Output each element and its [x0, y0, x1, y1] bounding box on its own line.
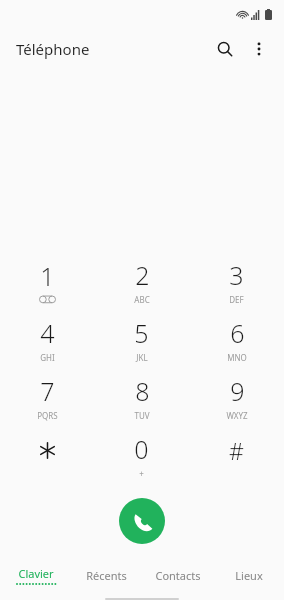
- staticText: 7: [40, 374, 55, 408]
- staticText: 9: [230, 374, 245, 408]
- staticText: 0: [134, 432, 149, 466]
- staticText: MNO: [227, 352, 247, 363]
- staticText: 3: [229, 258, 244, 292]
- staticText: +: [139, 468, 144, 479]
- button[interactable]: 7: [0, 368, 94, 426]
- button[interactable]: 1: [0, 252, 94, 310]
- staticText: Contacts: [155, 568, 201, 583]
- staticText: 1: [40, 259, 55, 293]
- button[interactable]: 2: [94, 252, 189, 310]
- staticText: PQRS: [37, 410, 58, 421]
- staticText: Lieux: [235, 568, 263, 583]
- button[interactable]: Clavier: [0, 562, 71, 588]
- staticText: WXYZ: [226, 410, 248, 421]
- staticText: Téléphone: [16, 39, 90, 59]
- staticText: JKL: [136, 352, 148, 363]
- staticText: 2: [135, 258, 150, 292]
- button[interactable]: Lieux: [213, 562, 284, 588]
- button[interactable]: 3: [189, 252, 284, 310]
- staticText: Clavier: [18, 566, 54, 581]
- button[interactable]: 6: [189, 310, 284, 368]
- button[interactable]: 8: [94, 368, 189, 426]
- button[interactable]: Contacts: [142, 562, 213, 588]
- button[interactable]: Search: [208, 32, 242, 66]
- staticText: TUV: [134, 410, 150, 421]
- button[interactable]: Call: [119, 498, 165, 544]
- button[interactable]: Star: [0, 426, 94, 484]
- button[interactable]: Pound: [189, 426, 284, 484]
- staticText: 8: [135, 374, 150, 408]
- staticText: GHI: [40, 352, 55, 363]
- staticText: 6: [230, 316, 245, 350]
- staticText: ABC: [134, 294, 150, 305]
- staticText: Récents: [86, 568, 127, 583]
- button[interactable]: Récents: [71, 562, 142, 588]
- button[interactable]: More options: [242, 32, 276, 66]
- staticText: 4: [40, 316, 55, 350]
- button[interactable]: 9: [189, 368, 284, 426]
- staticText: DEF: [229, 294, 244, 305]
- staticText: 5: [134, 316, 149, 350]
- button[interactable]: 4: [0, 310, 94, 368]
- button[interactable]: 5: [94, 310, 189, 368]
- staticText: #: [229, 435, 244, 466]
- button[interactable]: 0: [94, 426, 189, 484]
